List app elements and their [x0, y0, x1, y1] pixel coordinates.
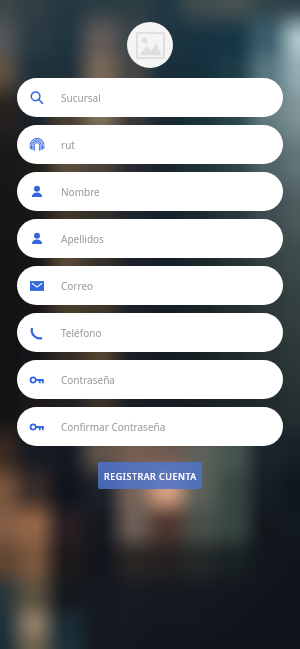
- staticText: Correo: [61, 279, 94, 293]
- button[interactable]: Seleccionar foto: [127, 22, 173, 68]
- staticText: Contraseña: [61, 373, 115, 387]
- staticText: rut: [61, 138, 75, 152]
- button[interactable]: Correo: [17, 266, 283, 305]
- staticText: REGISTRAR CUENTA: [104, 470, 197, 482]
- button[interactable]: rut: [17, 125, 283, 164]
- staticText: Sucursal: [61, 91, 101, 105]
- button[interactable]: Nombre: [17, 172, 283, 211]
- staticText: Apellidos: [61, 232, 104, 246]
- button[interactable]: REGISTRAR CUENTA: [98, 462, 202, 489]
- button[interactable]: Sucursal: [17, 78, 283, 117]
- button[interactable]: Contraseña: [17, 360, 283, 399]
- button[interactable]: Apellidos: [17, 219, 283, 258]
- staticText: Confirmar Contraseña: [61, 420, 166, 434]
- staticText: Teléfono: [61, 326, 102, 340]
- button[interactable]: Confirmar Contraseña: [17, 407, 283, 446]
- staticText: Nombre: [61, 185, 100, 199]
- button[interactable]: Teléfono: [17, 313, 283, 352]
